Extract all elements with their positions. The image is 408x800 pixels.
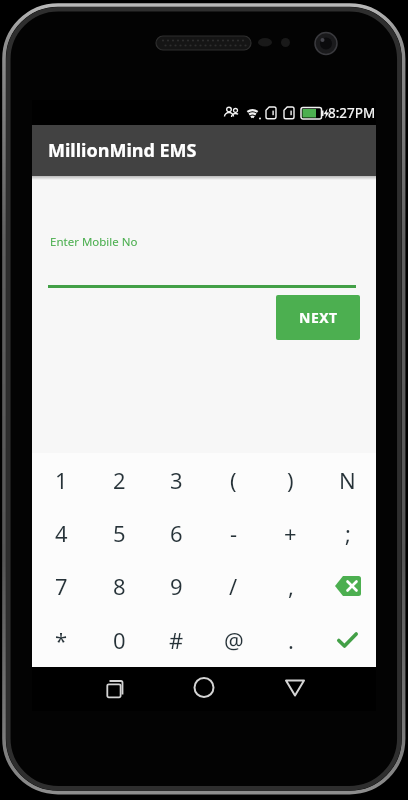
staticText: +	[284, 518, 297, 548]
button[interactable]: (	[205, 453, 262, 506]
button[interactable]: )	[262, 453, 319, 506]
staticText: 1	[55, 465, 68, 495]
button[interactable]: 3	[148, 453, 205, 506]
button[interactable]: *	[32, 613, 90, 667]
button[interactable]	[319, 559, 376, 613]
staticText: MillionMind EMS	[48, 138, 197, 163]
button[interactable]: +	[262, 506, 319, 559]
button[interactable]: NEXT	[276, 295, 360, 340]
staticText: ,	[288, 571, 294, 601]
staticText: 5	[113, 518, 126, 548]
staticText: 8:27PM	[328, 104, 376, 122]
staticText: #	[169, 625, 184, 655]
staticText: 7	[55, 571, 68, 601]
staticText: *	[55, 625, 68, 655]
button[interactable]: 2	[90, 453, 148, 506]
staticText: 6	[170, 518, 183, 548]
staticText: Enter Mobile No	[50, 234, 138, 250]
button[interactable]: #	[148, 613, 205, 667]
staticText: 0	[113, 625, 126, 655]
button[interactable]: N	[319, 453, 376, 506]
staticText: 2	[113, 465, 126, 495]
button[interactable]: ,	[262, 559, 319, 613]
button[interactable]	[319, 613, 376, 667]
button[interactable]	[182, 667, 226, 711]
staticText: (	[230, 465, 237, 495]
button[interactable]: 0	[90, 613, 148, 667]
staticText: 3	[170, 465, 183, 495]
staticText: ;	[345, 518, 351, 548]
button[interactable]: 8	[90, 559, 148, 613]
button[interactable]: /	[205, 559, 262, 613]
staticText: NEXT	[299, 308, 338, 327]
button[interactable]: @	[205, 613, 262, 667]
button[interactable]	[273, 667, 317, 711]
button[interactable]: 1	[32, 453, 90, 506]
staticText: @	[224, 625, 244, 655]
button[interactable]	[89, 667, 133, 711]
staticText: N	[339, 465, 356, 495]
button[interactable]: .	[262, 613, 319, 667]
button[interactable]: ;	[319, 506, 376, 559]
button[interactable]: -	[205, 506, 262, 559]
staticText: -	[230, 518, 238, 548]
staticText: /	[229, 571, 238, 601]
staticText: 4	[55, 518, 68, 548]
button[interactable]: 7	[32, 559, 90, 613]
staticText: 9	[170, 571, 183, 601]
staticText: )	[287, 465, 294, 495]
button[interactable]: 5	[90, 506, 148, 559]
staticText: .	[288, 625, 294, 655]
button[interactable]: 6	[148, 506, 205, 559]
staticText: 8	[113, 571, 126, 601]
button[interactable]: 4	[32, 506, 90, 559]
button[interactable]: 9	[148, 559, 205, 613]
